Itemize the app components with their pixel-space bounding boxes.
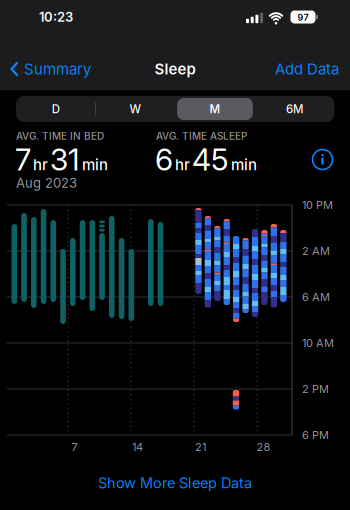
- button[interactable]: W: [96, 96, 175, 122]
- staticText: 14: [132, 440, 143, 453]
- staticText: 7: [15, 142, 31, 177]
- staticText: 2 PM: [302, 382, 329, 395]
- button[interactable]: Summary: [10, 55, 91, 83]
- staticText: 6M: [286, 102, 303, 116]
- staticText: 7: [71, 440, 77, 453]
- staticText: Summary: [24, 60, 91, 78]
- staticText: Show More Sleep Data: [98, 474, 252, 491]
- staticText: hr: [175, 156, 190, 174]
- staticText: 97: [297, 12, 308, 23]
- button[interactable]: Add Data: [275, 55, 339, 83]
- staticText: 6: [155, 142, 173, 177]
- staticText: 10 AM: [302, 336, 334, 349]
- staticText: Sleep: [154, 60, 195, 78]
- staticText: min: [231, 156, 257, 174]
- staticText: AVG. TIME ASLEEP: [156, 130, 247, 142]
- staticText: hr: [33, 156, 48, 174]
- staticText: Add Data: [275, 60, 339, 78]
- button[interactable]: Show More Sleep Data: [98, 468, 252, 498]
- staticText: Aug 2023: [16, 175, 77, 191]
- staticText: 6 PM: [302, 428, 329, 441]
- staticText: 6 AM: [302, 290, 330, 303]
- staticText: min: [82, 156, 108, 174]
- staticText: 10:23: [39, 9, 73, 25]
- staticText: AVG. TIME IN BED: [16, 130, 104, 142]
- staticText: 28: [256, 440, 270, 453]
- staticText: 2 AM: [302, 244, 330, 257]
- staticText: 21: [195, 440, 206, 453]
- staticText: W: [129, 102, 141, 116]
- button[interactable]: M: [175, 96, 255, 122]
- button[interactable]: 6M: [255, 96, 334, 122]
- staticText: 31: [50, 142, 80, 177]
- staticText: 45: [192, 142, 229, 177]
- staticText: M: [209, 102, 220, 116]
- button[interactable]: [310, 147, 334, 171]
- staticText: D: [52, 102, 60, 116]
- staticText: 10 PM: [302, 198, 333, 211]
- button[interactable]: D: [16, 96, 96, 122]
